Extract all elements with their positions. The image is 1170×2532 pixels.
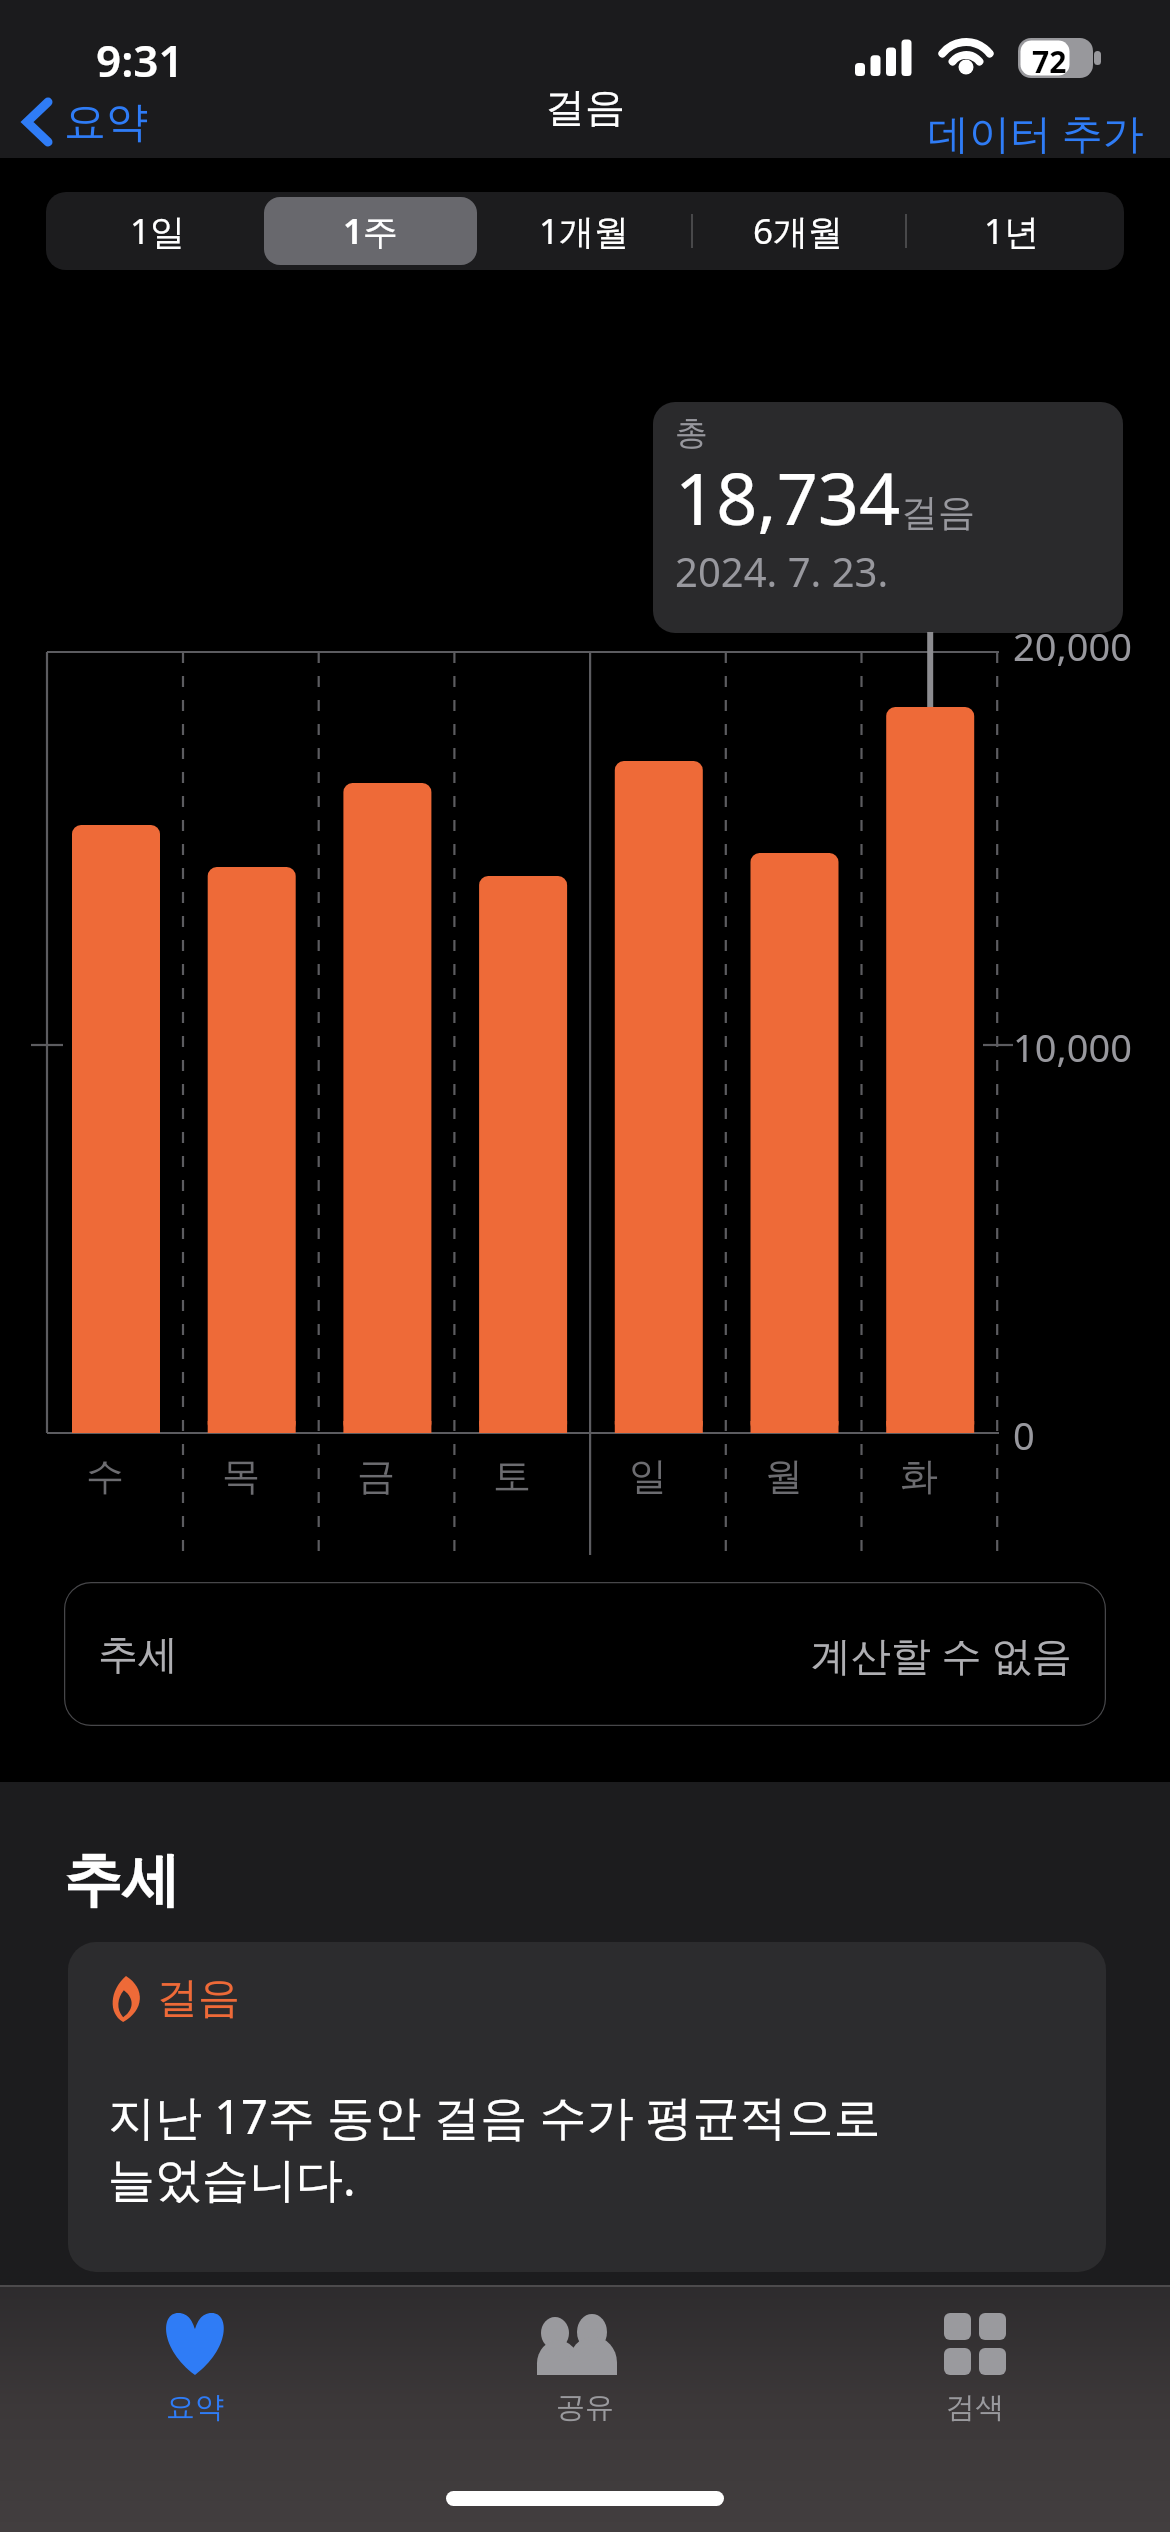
staticText: 수 <box>86 1452 124 1500</box>
button[interactable]: 요약 <box>0 86 166 158</box>
staticText: 금 <box>357 1452 395 1500</box>
button[interactable]: 1년 <box>905 197 1119 265</box>
staticText: 1주 <box>343 207 399 255</box>
button[interactable]: 1개월 <box>477 197 691 265</box>
staticText: 추세 <box>98 1629 178 1679</box>
button[interactable]: 걸음 <box>68 1942 1106 2272</box>
staticText: 72 <box>1032 41 1067 82</box>
button[interactable]: 검색 <box>780 2305 1170 2432</box>
staticText: 계산할 수 없음 <box>811 1627 1072 1682</box>
staticText: 18,734 <box>675 448 901 546</box>
staticText: 요약 <box>166 2389 224 2426</box>
staticText: 요약 <box>64 96 148 149</box>
button[interactable]: 6개월 <box>691 197 905 265</box>
staticText: 추세 <box>64 1844 180 1917</box>
staticText: 걸음 <box>156 1972 240 2025</box>
button[interactable]: 요약 <box>0 2305 390 2432</box>
staticText: 총 <box>675 412 708 454</box>
staticText: 걸음 <box>545 82 625 132</box>
staticText: 1년 <box>984 207 1040 255</box>
other: 공유 <box>537 2313 633 2375</box>
other: 검색 <box>944 2313 1006 2375</box>
staticText: 공유 <box>556 2389 614 2426</box>
other: 요약 <box>160 2313 230 2375</box>
staticText: 일 <box>629 1452 667 1500</box>
staticText: 6개월 <box>753 207 844 255</box>
button[interactable]: 공유 <box>390 2305 780 2432</box>
button[interactable]: 1일 <box>51 197 264 265</box>
staticText: 목 <box>222 1452 260 1500</box>
button[interactable]: 1주 <box>264 197 477 265</box>
staticText: 지난 17주 동안 걸음 수가 평균적으로 늘었습니다. <box>108 2084 881 2210</box>
staticText: 화 <box>900 1452 938 1500</box>
staticText: 20,000 <box>1013 620 1132 672</box>
staticText: 1개월 <box>539 207 630 255</box>
staticText: 검색 <box>946 2389 1004 2426</box>
staticText: 2024. 7. 23. <box>675 544 889 598</box>
button[interactable]: 데이터 추가 <box>902 96 1170 168</box>
button[interactable]: 추세 <box>64 1582 1106 1726</box>
staticText: 1일 <box>130 207 186 255</box>
staticText: 월 <box>765 1452 803 1500</box>
staticText: 9:31 <box>96 30 184 90</box>
staticText: 10,000 <box>1013 1021 1132 1073</box>
staticText: 0 <box>1013 1409 1035 1461</box>
staticText: 토 <box>493 1452 531 1500</box>
staticText: 걸음 <box>901 489 975 536</box>
